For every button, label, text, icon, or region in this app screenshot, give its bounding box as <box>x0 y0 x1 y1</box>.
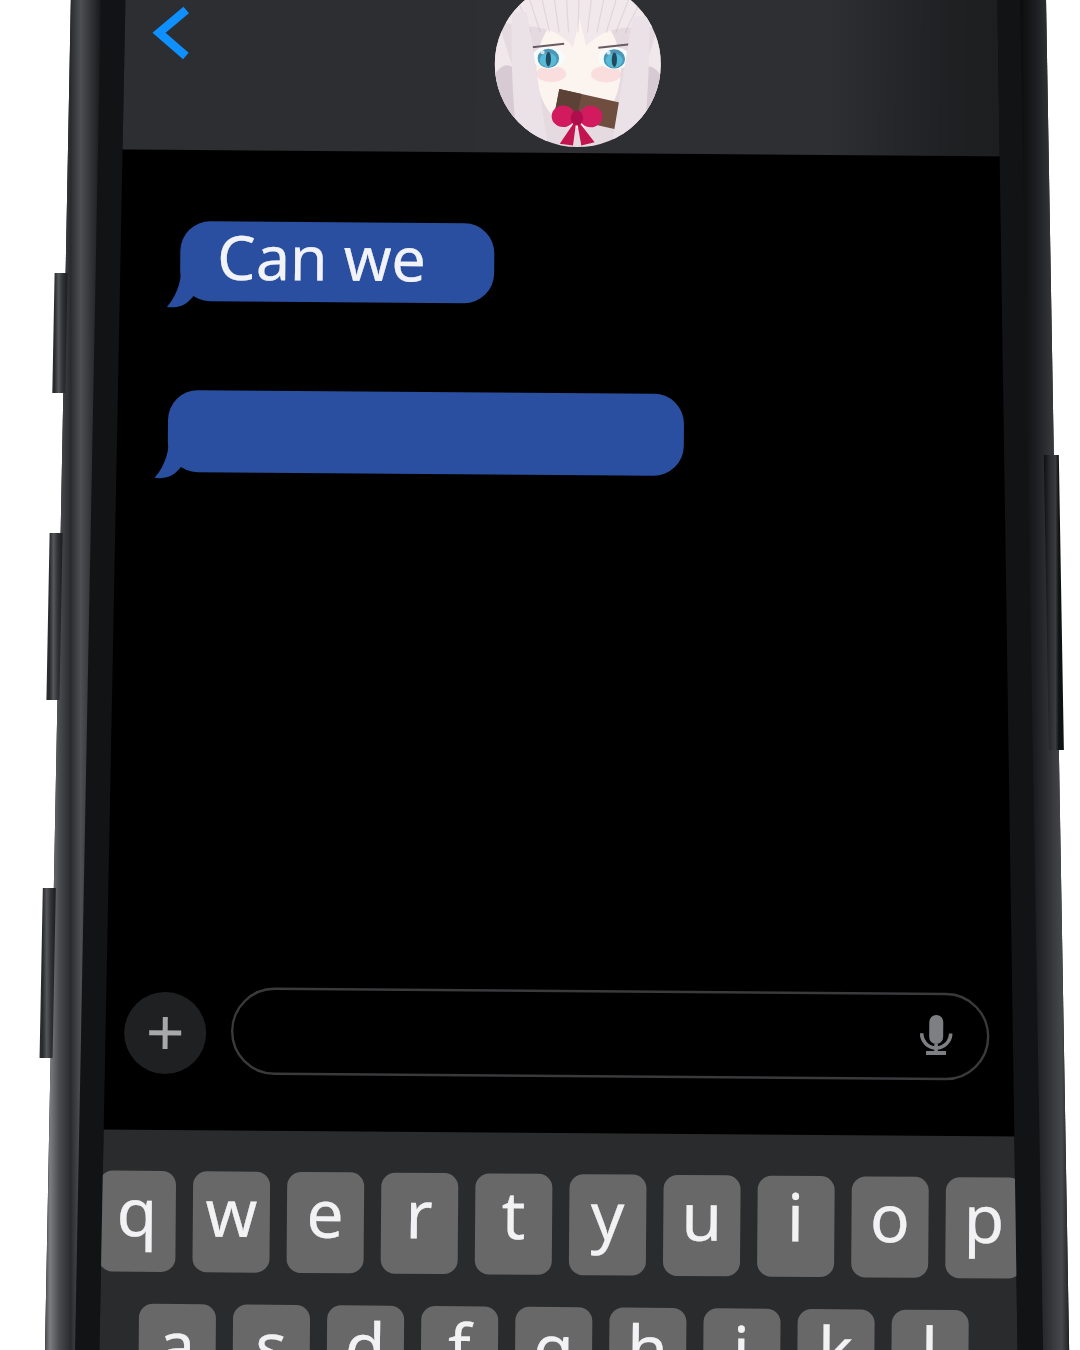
button[interactable]: a <box>144 1307 221 1350</box>
button[interactable]: Voice input <box>912 1000 968 1070</box>
button[interactable]: k <box>803 1312 880 1350</box>
button[interactable]: Contact avatar <box>489 0 657 148</box>
button[interactable]: q <box>103 1174 180 1275</box>
button[interactable]: l <box>897 1313 974 1350</box>
button[interactable]: Message input field <box>234 990 924 1078</box>
button[interactable]: p <box>950 1181 1027 1282</box>
button[interactable]: t <box>479 1177 556 1278</box>
button[interactable]: w <box>197 1175 274 1276</box>
button[interactable]: d <box>332 1308 409 1350</box>
button[interactable]: Message <box>150 388 684 476</box>
button[interactable]: e <box>291 1175 368 1276</box>
button[interactable]: g <box>520 1310 597 1350</box>
button[interactable]: Add attachment <box>126 994 210 1078</box>
button[interactable]: f <box>426 1309 503 1350</box>
button[interactable]: Message: Can we <box>163 219 495 305</box>
button[interactable]: s <box>238 1308 315 1350</box>
button[interactable]: j <box>709 1311 786 1350</box>
button[interactable]: u <box>668 1178 745 1279</box>
button[interactable]: o <box>856 1180 933 1281</box>
button[interactable]: r <box>385 1176 462 1277</box>
button[interactable]: y <box>574 1178 651 1279</box>
button[interactable]: i <box>762 1179 839 1280</box>
button[interactable]: h <box>615 1311 692 1350</box>
button[interactable]: Back <box>128 0 248 100</box>
